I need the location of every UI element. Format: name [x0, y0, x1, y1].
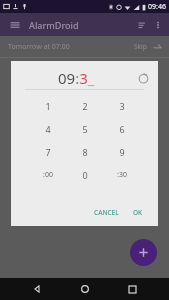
button[interactable]: 1 — [29, 94, 66, 117]
staticText: 5 — [82, 123, 88, 135]
staticText: 09:3_ — [58, 68, 95, 88]
button[interactable]: :00 — [29, 163, 66, 186]
button[interactable]: 2 — [66, 94, 103, 117]
button[interactable]: 4 — [29, 117, 66, 140]
staticText: 3 — [119, 100, 125, 112]
button[interactable]: 8 — [66, 140, 103, 163]
button[interactable]: Tomorrow at 07:00 — [0, 36, 169, 57]
staticText: 09:46 — [148, 2, 166, 12]
staticText: 1 — [45, 100, 51, 112]
button[interactable]: OK — [128, 205, 148, 220]
button[interactable]: :30 — [103, 163, 140, 186]
button[interactable]: Sort — [135, 17, 151, 33]
button[interactable]: 6 — [103, 117, 140, 140]
staticText: 4 — [45, 123, 51, 135]
button[interactable]: Menu — [8, 18, 22, 32]
button[interactable]: 0 — [66, 163, 103, 186]
staticText: AlarmDroid — [29, 19, 79, 31]
button[interactable]: 9 — [103, 140, 140, 163]
button[interactable]: Home — [74, 278, 96, 300]
staticText: 6 — [119, 123, 125, 135]
staticText: 7 — [45, 146, 51, 158]
button[interactable]: Recents — [121, 278, 143, 300]
staticText: Skip — [134, 42, 147, 51]
staticText: 0 — [82, 169, 88, 181]
staticText: 8 — [82, 146, 88, 158]
button[interactable]: More options — [151, 18, 165, 32]
staticText: Tomorrow at 07:00 — [8, 42, 70, 52]
button[interactable]: Back — [26, 278, 48, 300]
staticText: CANCEL — [94, 208, 119, 217]
staticText: OK — [133, 208, 143, 217]
staticText: 9 — [119, 146, 125, 158]
button[interactable]: Add alarm — [130, 239, 157, 266]
button[interactable]: 3 — [103, 94, 140, 117]
button[interactable]: 7 — [29, 140, 66, 163]
staticText: 2 — [82, 100, 88, 112]
staticText: :00 — [43, 170, 53, 180]
button[interactable]: Backspace — [137, 72, 150, 85]
button[interactable]: CANCEL — [89, 205, 124, 220]
staticText: :30 — [117, 170, 127, 180]
button[interactable]: 5 — [66, 117, 103, 140]
